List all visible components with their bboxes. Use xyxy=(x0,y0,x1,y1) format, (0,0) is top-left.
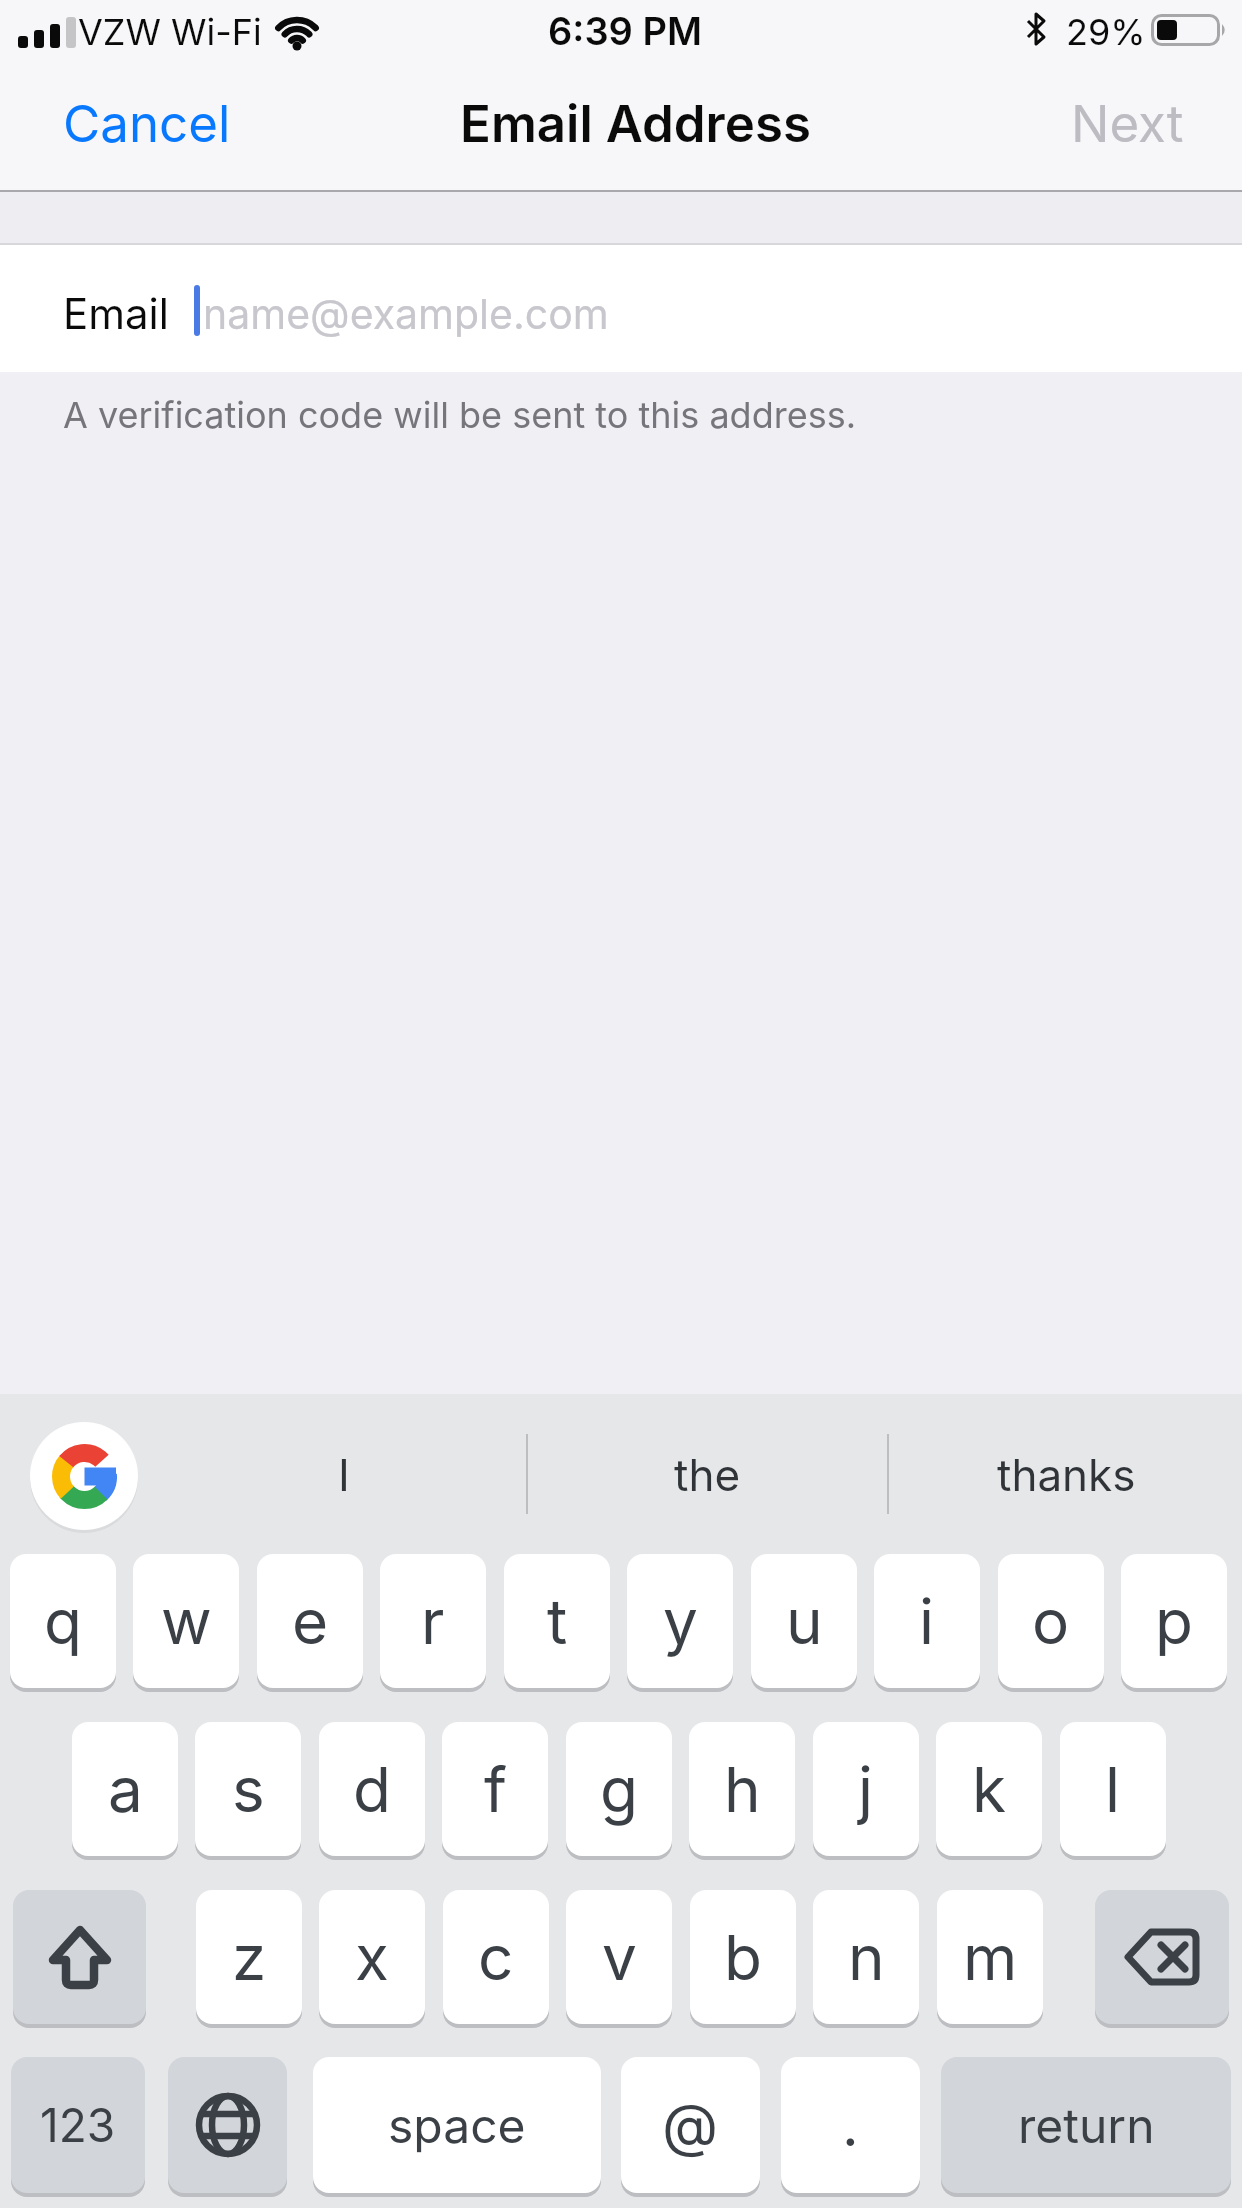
staticText: v xyxy=(602,1920,637,1995)
staticText: A verification code will be sent to this… xyxy=(63,393,857,437)
button[interactable]: m xyxy=(937,1890,1043,2024)
button[interactable]: the xyxy=(529,1404,886,1544)
button[interactable]: c xyxy=(443,1890,549,2024)
staticText: p xyxy=(1155,1584,1193,1659)
staticText: return xyxy=(1018,2096,1155,2154)
staticText: t xyxy=(547,1584,568,1659)
staticText: h xyxy=(724,1752,761,1827)
staticText: g xyxy=(600,1752,639,1827)
button[interactable]: z xyxy=(196,1890,302,2024)
staticText: Next xyxy=(1071,93,1184,155)
button[interactable]: j xyxy=(813,1722,919,1856)
staticText: 29% xyxy=(1066,10,1146,54)
button[interactable]: thanks xyxy=(890,1404,1242,1544)
button[interactable] xyxy=(1040,80,1200,160)
button[interactable]: g xyxy=(566,1722,672,1856)
staticText: a xyxy=(108,1752,143,1827)
button[interactable]: s xyxy=(195,1722,301,1856)
button[interactable]: f xyxy=(442,1722,548,1856)
button[interactable] xyxy=(168,2057,287,2193)
button[interactable]: d xyxy=(319,1722,425,1856)
staticText: s xyxy=(232,1752,265,1827)
staticText: l xyxy=(1105,1752,1121,1827)
button[interactable]: a xyxy=(72,1722,178,1856)
staticText: 6:39 PM xyxy=(548,8,703,54)
button[interactable]: n xyxy=(813,1890,919,2024)
button[interactable]: I xyxy=(160,1404,527,1544)
button[interactable]: . xyxy=(781,2057,920,2193)
staticText: VZW Wi-Fi xyxy=(78,10,262,54)
button[interactable]: Email xyxy=(0,245,1242,372)
staticText: Email Address xyxy=(460,93,811,155)
button[interactable]: u xyxy=(751,1554,857,1688)
button[interactable]: h xyxy=(689,1722,795,1856)
button[interactable]: l xyxy=(1060,1722,1166,1856)
staticText: y xyxy=(663,1584,698,1659)
button[interactable]: y xyxy=(627,1554,733,1688)
button[interactable] xyxy=(40,80,260,160)
staticText: c xyxy=(478,1920,514,1995)
button[interactable] xyxy=(30,1422,138,1530)
staticText: the xyxy=(674,1448,741,1501)
staticText: I xyxy=(338,1448,350,1501)
button[interactable]: o xyxy=(998,1554,1104,1688)
staticText: d xyxy=(353,1752,391,1827)
button[interactable]: space xyxy=(313,2057,601,2193)
staticText: n xyxy=(848,1920,885,1995)
staticText: b xyxy=(724,1920,762,1995)
staticText: w xyxy=(161,1584,212,1659)
staticText: k xyxy=(972,1752,1007,1827)
staticText: e xyxy=(292,1584,329,1659)
button[interactable] xyxy=(13,1890,146,2024)
staticText: x xyxy=(355,1920,389,1995)
button[interactable]: t xyxy=(504,1554,610,1688)
staticText: r xyxy=(421,1584,445,1659)
staticText: j xyxy=(858,1752,874,1827)
staticText: q xyxy=(44,1584,82,1659)
staticText: thanks xyxy=(997,1448,1136,1501)
button[interactable]: 123 xyxy=(11,2057,145,2193)
staticText: f xyxy=(484,1752,507,1827)
button[interactable]: return xyxy=(941,2057,1231,2193)
staticText: @ xyxy=(662,2090,719,2160)
staticText: z xyxy=(232,1920,267,1995)
staticText: m xyxy=(963,1920,1018,1995)
button[interactable]: p xyxy=(1121,1554,1227,1688)
button[interactable]: w xyxy=(133,1554,239,1688)
button[interactable] xyxy=(1095,1890,1229,2024)
button[interactable]: @ xyxy=(621,2057,760,2193)
staticText: Cancel xyxy=(63,93,231,155)
button[interactable]: e xyxy=(257,1554,363,1688)
staticText: u xyxy=(786,1584,823,1659)
button[interactable]: i xyxy=(874,1554,980,1688)
staticText: o xyxy=(1032,1584,1070,1659)
button[interactable]: q xyxy=(10,1554,116,1688)
staticText: Email xyxy=(63,288,169,339)
staticText: . xyxy=(842,2090,859,2160)
button[interactable]: b xyxy=(690,1890,796,2024)
button[interactable]: r xyxy=(380,1554,486,1688)
staticText: i xyxy=(919,1584,935,1659)
button[interactable]: v xyxy=(566,1890,672,2024)
staticText: 123 xyxy=(40,2097,116,2153)
staticText: space xyxy=(388,2096,526,2154)
button[interactable]: k xyxy=(936,1722,1042,1856)
staticText: name@example.com xyxy=(203,289,609,339)
button[interactable]: x xyxy=(319,1890,425,2024)
